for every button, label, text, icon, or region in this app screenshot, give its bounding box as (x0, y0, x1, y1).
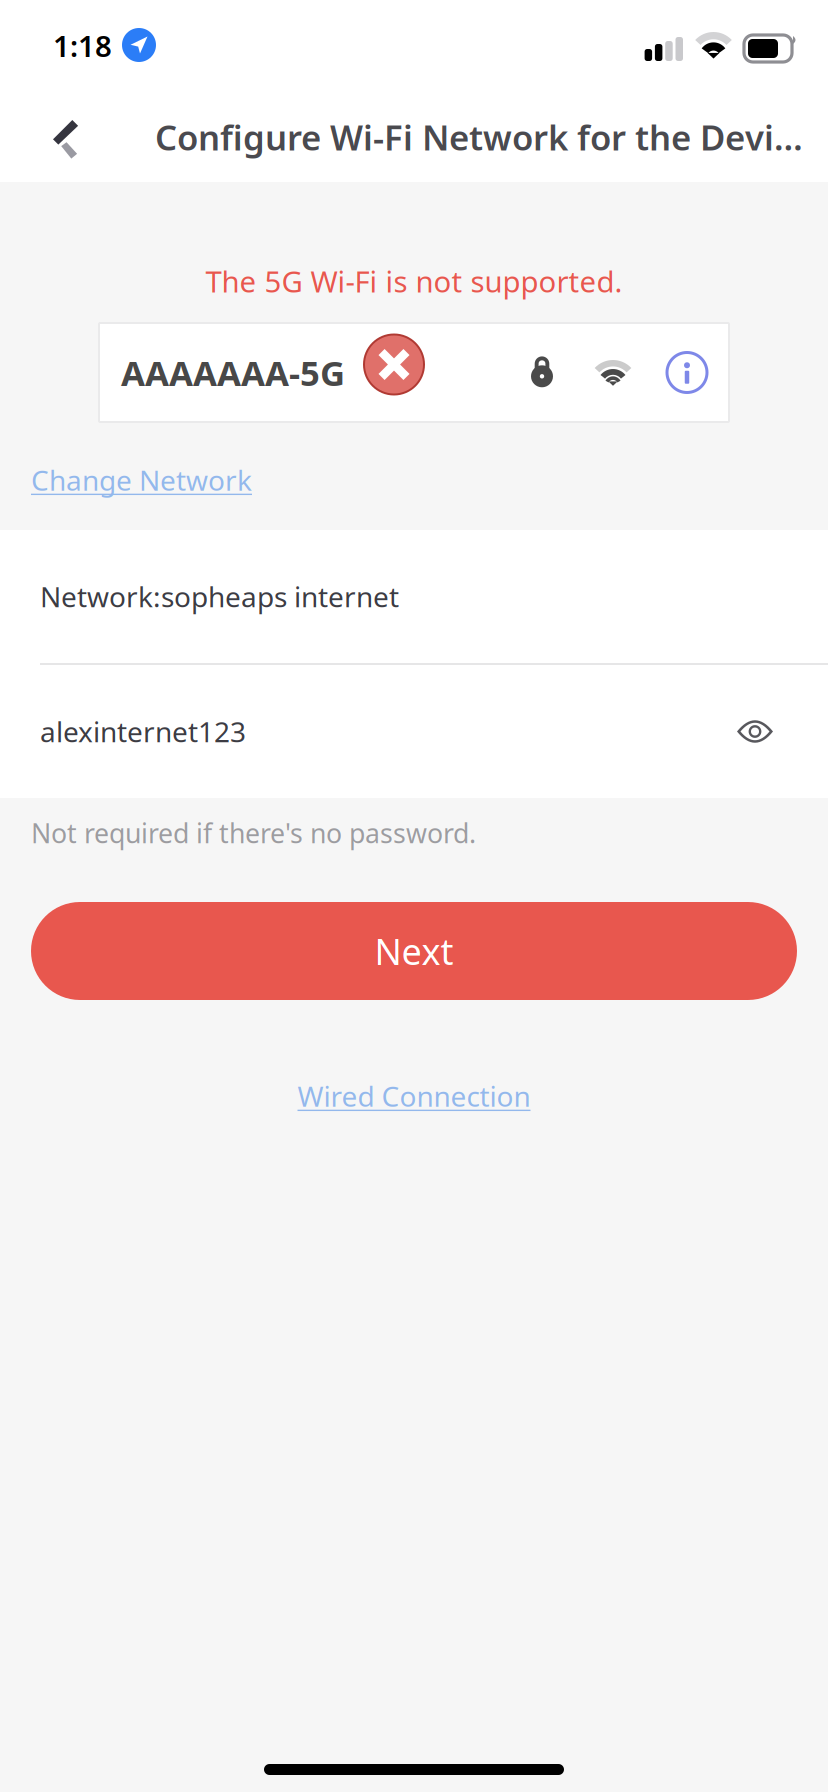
staticText: Configure Wi-Fi Network for the Devi… (155, 114, 803, 160)
staticText: Change Network (31, 461, 252, 499)
button[interactable]: Next (31, 902, 797, 1000)
button[interactable]: Wired Connection (0, 1000, 828, 1134)
staticText: Next (374, 927, 453, 975)
staticText: Wired Connection (297, 1077, 530, 1115)
staticText: Not required if there's no password. (31, 815, 476, 851)
staticText: AAAAAAA-5G (121, 349, 345, 395)
button[interactable]: Show password (727, 705, 783, 757)
button[interactable]: Change Network (0, 462, 276, 498)
staticText: Network:sopheaps internet (40, 578, 399, 615)
staticText: 1:18 (53, 26, 112, 65)
button[interactable]: Back (27, 94, 105, 180)
staticText: alexinternet123 (40, 713, 246, 750)
staticText: The 5G Wi-Fi is not supported. (205, 261, 622, 300)
